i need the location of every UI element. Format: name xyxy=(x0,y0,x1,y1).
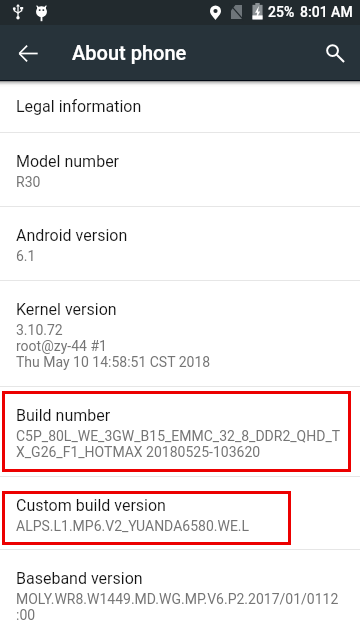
staticText: ALPS.L1.MP6.V2_YUANDA6580.WE.L xyxy=(16,518,250,534)
staticText: MOLY.WR8.W1449.MD.WG.MP.V6.P2.2017/01/01… xyxy=(16,591,339,623)
staticText: Model number xyxy=(16,152,120,171)
staticText: Build number xyxy=(16,406,111,425)
button[interactable]: Baseband version xyxy=(0,550,360,640)
button[interactable]: Legal information xyxy=(0,80,360,132)
button[interactable]: Custom build version xyxy=(0,477,360,549)
staticText: Legal information xyxy=(16,97,142,116)
button[interactable]: Build number xyxy=(0,387,360,476)
staticText: Kernel version xyxy=(16,300,117,319)
staticText: 6.1 xyxy=(16,248,36,264)
staticText: 3.10.72 root@zy-44 #1 Thu May 10 14:58:5… xyxy=(16,322,211,370)
button[interactable]: Search xyxy=(311,29,359,77)
staticText: 25% xyxy=(268,4,295,20)
staticText: C5P_80L_WE_3GW_B15_EMMC_32_8_DDR2_QHD_TX… xyxy=(16,428,346,460)
button[interactable]: Android version xyxy=(0,207,360,280)
staticText: Android version xyxy=(16,226,128,245)
staticText: Custom build version xyxy=(16,496,166,515)
staticText: About phone xyxy=(72,41,187,64)
button[interactable]: Kernel version xyxy=(0,281,360,386)
staticText: R30 xyxy=(16,174,41,190)
staticText: Baseband version xyxy=(16,569,143,588)
staticText: 8:01 AM xyxy=(300,4,353,20)
button[interactable]: Navigate up xyxy=(4,29,52,77)
button[interactable]: Model number xyxy=(0,133,360,206)
